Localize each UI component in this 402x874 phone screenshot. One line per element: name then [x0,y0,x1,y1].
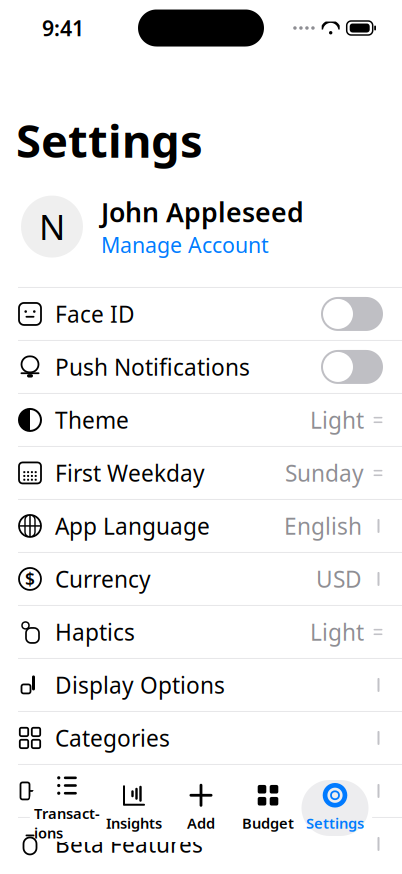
button[interactable]: N [0,194,402,287]
button[interactable]: Push Notifications [0,341,402,393]
staticText: Add [187,813,215,833]
staticText: English [284,511,362,541]
staticText: Push Notifications [55,352,250,382]
button[interactable]: Transactions [33,780,100,836]
staticText: Settings [16,110,203,170]
staticText: Settings [306,813,364,833]
button[interactable]: Categories [0,712,402,764]
staticText: $ [25,567,35,590]
button[interactable]: Face ID [0,288,402,340]
staticText: 9:41 [42,14,84,42]
button[interactable]: Display Options [0,659,402,711]
staticText: Import Data [55,776,186,806]
staticText: Transactions [34,803,100,842]
button[interactable]: App Language [0,500,402,552]
staticText: First Weekday [55,458,205,488]
staticText: Budget [242,813,294,833]
staticText: Insights [106,813,162,833]
staticText: Face ID [55,299,135,329]
staticText: Sunday [285,458,364,488]
button[interactable]: Theme [0,394,402,446]
staticText: N [39,204,65,250]
button[interactable]: $ [0,553,402,605]
staticText: John Appleseed [101,194,304,230]
button[interactable]: Haptics [0,606,402,658]
staticText: Display Options [55,670,225,700]
button[interactable]: Import Data [0,765,402,817]
button[interactable]: Add [167,780,234,836]
staticText: Theme [55,405,129,435]
button[interactable]: Budget [234,780,301,836]
button[interactable]: Beta Features [0,818,402,870]
button[interactable]: First Weekday [0,447,402,499]
staticText: USD [316,564,362,594]
staticText: Light [310,405,364,435]
staticText: Manage Account [101,231,269,259]
staticText: Currency [55,564,151,594]
staticText: Beta Features [55,829,203,859]
button[interactable]: Settings [301,780,368,836]
staticText: Light [310,617,364,647]
staticText: App Language [55,511,210,541]
button[interactable]: Insights [100,780,167,836]
staticText: Haptics [55,617,135,647]
staticText: Categories [55,723,170,753]
